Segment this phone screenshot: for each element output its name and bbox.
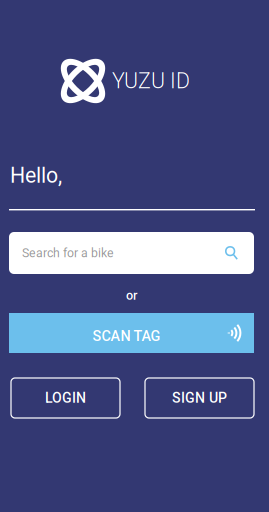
staticText: Search for a bike: [22, 246, 114, 260]
button[interactable]: LOGIN: [11, 378, 120, 418]
button[interactable]: SCAN TAG: [9, 313, 254, 353]
staticText: Hello,: [10, 163, 62, 188]
staticText: YUZU ID: [112, 68, 190, 93]
button[interactable]: SIGN UP: [145, 378, 254, 418]
staticText: or: [126, 288, 137, 303]
staticText: LOGIN: [45, 390, 86, 406]
button[interactable]: Search for a bike: [9, 232, 254, 274]
staticText: SCAN TAG: [92, 328, 160, 344]
staticText: SIGN UP: [172, 390, 227, 406]
